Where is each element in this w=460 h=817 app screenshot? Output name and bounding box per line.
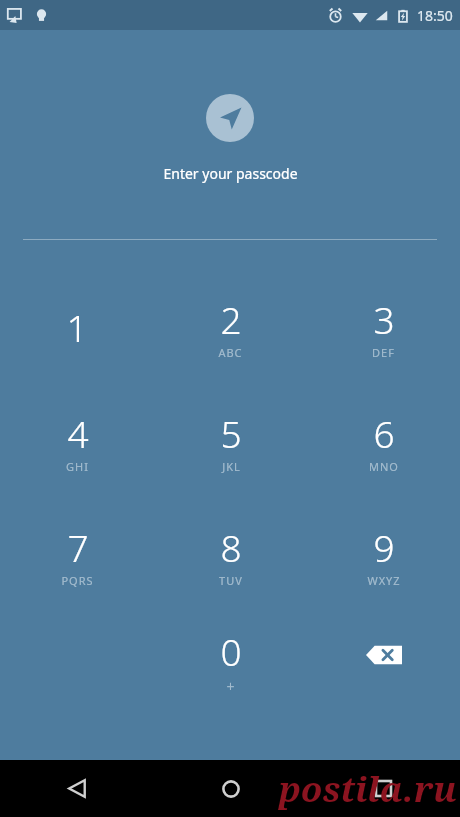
staticText: 2 xyxy=(220,294,242,344)
staticText: TUV xyxy=(219,573,243,588)
staticText: 18:50 xyxy=(417,6,453,25)
staticText: 5 xyxy=(220,408,242,458)
staticText: GHI xyxy=(66,459,89,474)
button[interactable]: Home xyxy=(154,760,307,817)
button[interactable]: Back xyxy=(0,760,154,817)
staticText: postila.ru xyxy=(279,765,457,813)
button[interactable]: 0 xyxy=(154,612,307,710)
button[interactable]: 2 xyxy=(154,270,307,384)
staticText: 1 xyxy=(66,302,88,352)
button[interactable]: 1 xyxy=(0,270,154,384)
staticText: Enter your passcode xyxy=(163,164,298,183)
button[interactable]: 8 xyxy=(154,498,307,612)
staticText: ABC xyxy=(218,345,243,360)
button[interactable]: 4 xyxy=(0,384,154,498)
staticText: MNO xyxy=(369,459,399,474)
staticText: WXYZ xyxy=(367,573,401,588)
staticText: 8 xyxy=(220,522,242,572)
staticText: 0 xyxy=(220,626,242,676)
staticText: JKL xyxy=(222,459,241,474)
button[interactable]: 3 xyxy=(307,270,460,384)
staticText: DEF xyxy=(372,345,395,360)
staticText: + xyxy=(226,677,236,696)
staticText: 3 xyxy=(373,294,395,344)
staticText: 6 xyxy=(373,408,395,458)
button[interactable]: 5 xyxy=(154,384,307,498)
staticText: 9 xyxy=(373,522,395,572)
button[interactable]: Recent apps xyxy=(307,760,460,817)
button[interactable]: 7 xyxy=(0,498,154,612)
button[interactable]: 9 xyxy=(307,498,460,612)
staticText: PQRS xyxy=(61,573,94,588)
staticText: 7 xyxy=(67,522,89,572)
button[interactable]: 6 xyxy=(307,384,460,498)
button[interactable]: Delete xyxy=(307,612,460,710)
staticText: 4 xyxy=(67,408,89,458)
